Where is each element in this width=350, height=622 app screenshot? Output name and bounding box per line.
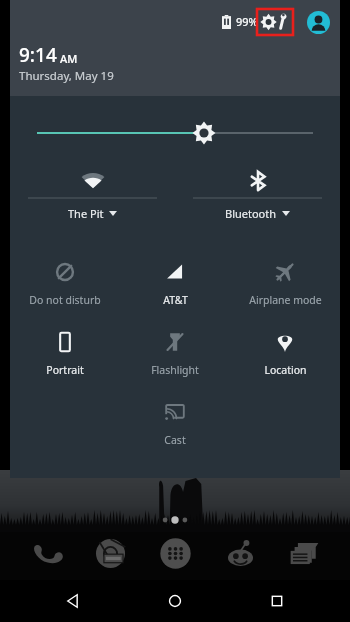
button[interactable]: Brightness [37,120,313,146]
staticText: Portrait [46,363,84,377]
staticText: 99% [236,14,258,29]
staticText: Flashlight [151,363,199,377]
button[interactable]: Phone [27,534,65,572]
button[interactable]: Recent apps [248,580,306,622]
button[interactable]: Back [44,580,102,622]
button[interactable]: Apps [156,534,194,572]
staticText: AM [60,51,78,66]
staticText: The Pit [68,206,104,221]
button[interactable]: Bluetooth [193,167,322,221]
button[interactable]: Location [230,318,340,377]
button[interactable]: Settings [256,8,294,36]
button[interactable]: Home [146,580,204,622]
staticText: Location [264,363,307,377]
button[interactable]: Messages [285,534,323,572]
staticText: Cast [164,433,186,447]
button[interactable]: Chrome Beta [91,534,129,572]
button[interactable]: Airplane mode [230,248,340,307]
staticText: Thursday, May 19 [19,68,114,84]
staticText: AT&T [163,293,188,307]
button[interactable]: Cast [120,388,230,447]
button[interactable]: Reddit [221,534,259,572]
staticText: Airplane mode [249,293,322,307]
staticText: 9:14 [19,42,57,68]
staticText: Bluetooth [225,206,277,221]
staticText: Do not disturb [29,293,101,307]
button[interactable]: Flashlight [120,318,230,377]
button[interactable]: AT&T [120,248,230,307]
button[interactable]: Do not disturb [10,248,120,307]
button[interactable]: Portrait [10,318,120,377]
button[interactable]: User profile [307,11,330,34]
button[interactable]: Wi-Fi [28,167,157,221]
